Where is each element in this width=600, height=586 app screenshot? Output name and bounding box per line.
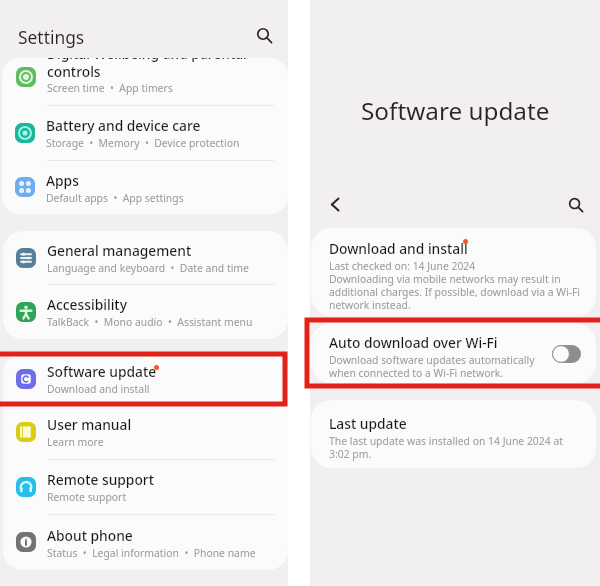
staticText: Battery and device care	[46, 116, 201, 135]
button[interactable]: Auto download over Wi-Fi	[311, 323, 596, 383]
staticText: Download and install	[329, 239, 468, 258]
button[interactable]: Back	[319, 188, 351, 220]
staticText: Accessibility	[47, 295, 127, 314]
staticText: Default apps • App settings	[46, 191, 184, 205]
button[interactable]: Search	[249, 20, 279, 50]
staticText: Software update	[47, 362, 157, 381]
button[interactable]: Last update	[311, 400, 596, 468]
staticText: User manual	[47, 415, 132, 434]
staticText: Learn more	[47, 435, 104, 449]
staticText: Status • Legal information • Phone name	[47, 546, 256, 560]
staticText: Auto download over Wi-Fi	[329, 333, 498, 352]
staticText: Last checked on: 14 June 2024 Downloadin…	[329, 259, 581, 312]
staticText: Download and install	[47, 382, 150, 396]
staticText: Last update	[329, 414, 407, 433]
staticText: Settings	[18, 25, 85, 49]
staticText: The last update was installed on 14 June…	[329, 434, 563, 461]
staticText: TalkBack • Mono audio • Assistant menu	[47, 315, 253, 329]
staticText: Remote support	[47, 490, 127, 504]
staticText: About phone	[47, 526, 133, 545]
button[interactable]: User manual	[3, 404, 288, 459]
staticText: Download software updates automatically …	[329, 353, 535, 380]
button[interactable]: Apps	[2, 160, 288, 214]
staticText: Digital Wellbeing and parental	[47, 58, 247, 63]
button[interactable]: Download and install	[311, 228, 596, 316]
button[interactable]: General management	[3, 231, 288, 284]
button[interactable]: Battery and device care	[2, 105, 288, 160]
staticText: Remote support	[47, 470, 154, 489]
button[interactable]: Remote support	[3, 459, 288, 514]
staticText: Apps	[46, 171, 79, 190]
button[interactable]: Digital Wellbeing and parental	[2, 58, 288, 105]
button[interactable]: About phone	[3, 514, 288, 570]
staticText: controls	[47, 62, 101, 81]
button[interactable]: Accessibility	[3, 284, 288, 339]
staticText: Storage • Memory • Device protection	[46, 136, 240, 150]
staticText: Screen time • App timers	[47, 81, 173, 95]
staticText: Software update	[361, 94, 550, 127]
staticText: Language and keyboard • Date and time	[47, 261, 249, 275]
button[interactable]: Software update	[3, 353, 288, 404]
button[interactable]: Search	[560, 189, 592, 221]
staticText: General management	[47, 241, 192, 260]
button[interactable]: Auto download over Wi-Fi toggle	[552, 345, 581, 363]
